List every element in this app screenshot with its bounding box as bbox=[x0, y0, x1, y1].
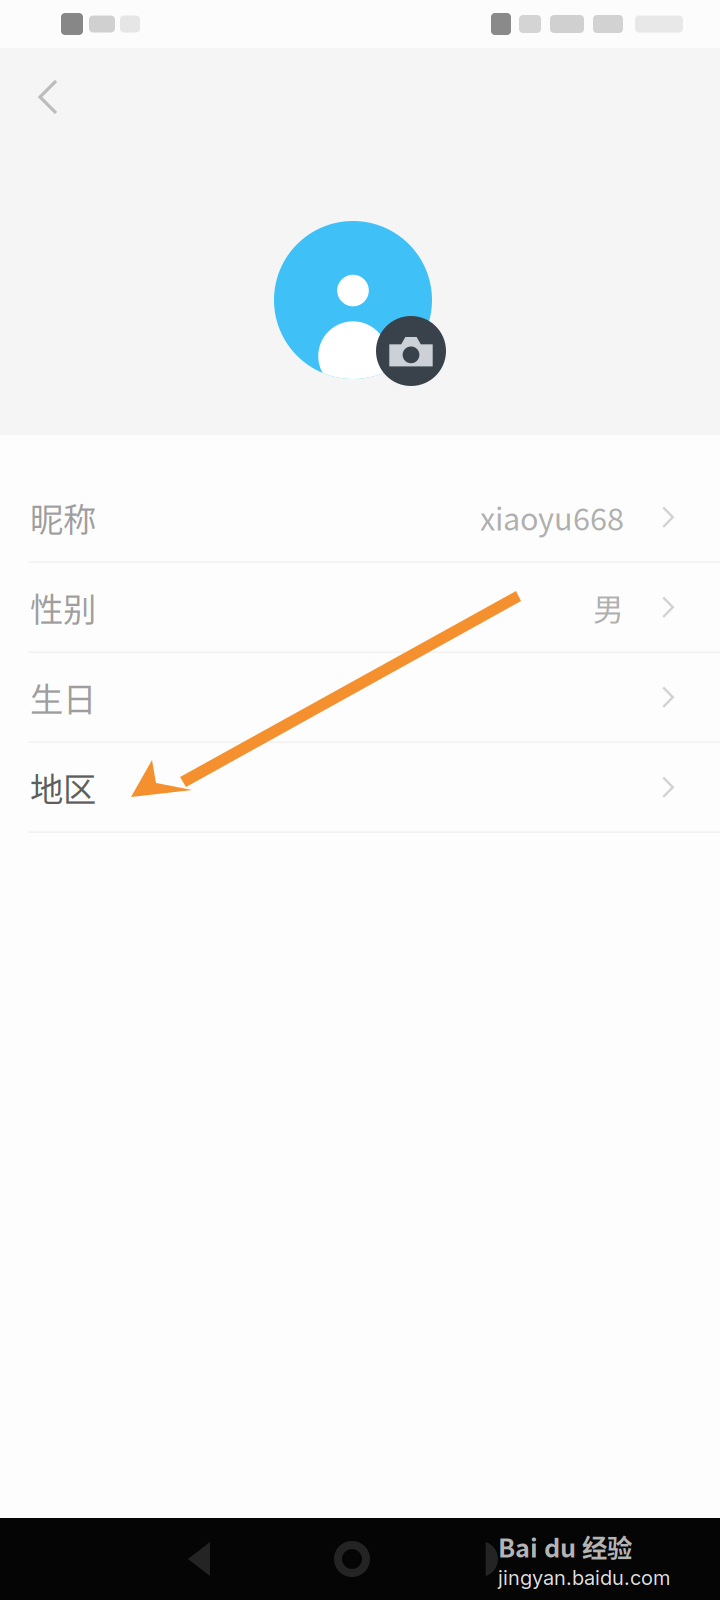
button[interactable]: 昵称 bbox=[0, 473, 720, 563]
button[interactable]: 生日 bbox=[0, 653, 720, 743]
button[interactable]: Back bbox=[184, 1536, 230, 1582]
staticText: Bai du 经验 bbox=[498, 1528, 632, 1565]
staticText: 生日 bbox=[30, 673, 96, 721]
staticText: 男 bbox=[593, 585, 624, 629]
button[interactable]: Recents bbox=[474, 1536, 520, 1582]
staticText: 性别 bbox=[30, 583, 96, 631]
staticText: jingyan.baidu.com bbox=[498, 1566, 670, 1590]
button[interactable]: Back bbox=[0, 48, 96, 146]
staticText: xiaoyu668 bbox=[480, 495, 624, 539]
button[interactable]: 地区 bbox=[0, 743, 720, 833]
button[interactable]: Home bbox=[329, 1536, 375, 1582]
button[interactable]: 性别 bbox=[0, 563, 720, 653]
button[interactable]: Change profile photo bbox=[274, 221, 446, 386]
staticText: 地区 bbox=[30, 763, 96, 811]
staticText: 昵称 bbox=[30, 493, 96, 541]
